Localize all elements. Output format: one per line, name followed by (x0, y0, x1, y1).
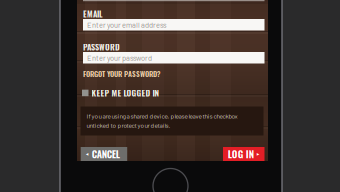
staticText: KEEP ME LOGGED IN (91, 87, 158, 99)
staticText: EMAIL (83, 8, 103, 20)
staticText: FORGOT YOUR PASSWORD? (83, 68, 160, 79)
staticText: unticked to protect your details. (86, 121, 170, 129)
staticText: CANCEL (92, 147, 120, 161)
button[interactable]: ◂ (81, 147, 127, 161)
staticText: LOG IN (228, 147, 254, 161)
button[interactable]: FORGOT YOUR PASSWORD? (83, 68, 160, 79)
staticText: PASSWORD (83, 41, 120, 53)
staticText: ▸ (257, 151, 260, 157)
staticText: If you are using a shared device, please… (86, 112, 237, 120)
button[interactable]: KEEP ME LOGGED IN (82, 87, 158, 99)
button[interactable]: LOG IN (223, 147, 264, 161)
staticText: Enter your password (87, 53, 152, 62)
staticText: ◂ (86, 151, 89, 157)
staticText: Enter your email address (87, 20, 167, 29)
